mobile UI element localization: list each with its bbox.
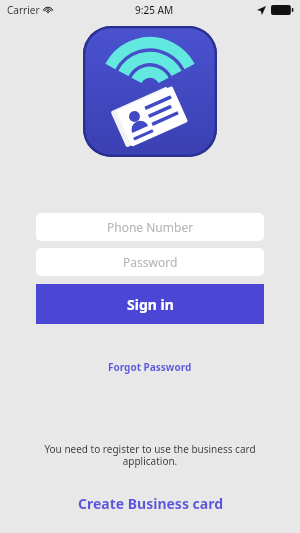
other: App icon (83, 26, 217, 157)
staticText: You need to register to use the business… (25, 442, 275, 468)
staticText: Create Business card (78, 494, 223, 513)
staticText: Carrier (7, 3, 40, 17)
button[interactable]: Password (36, 248, 264, 276)
staticText: Password (123, 254, 178, 270)
button[interactable]: Create Business card (66, 490, 235, 517)
button[interactable]: Sign in (36, 284, 264, 324)
staticText: Sign in (127, 295, 174, 314)
staticText: 9:25 AM (135, 3, 174, 17)
staticText: Forgot Password (108, 360, 192, 374)
button[interactable]: Phone Number (36, 213, 264, 241)
staticText: Phone Number (107, 219, 194, 235)
button[interactable]: Forgot Password (98, 356, 202, 378)
